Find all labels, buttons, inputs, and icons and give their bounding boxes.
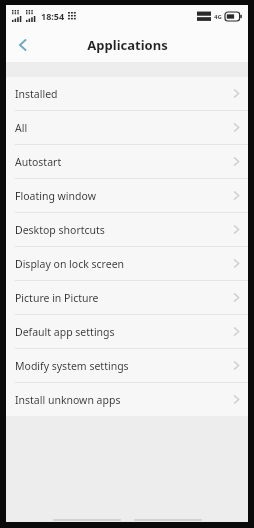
staticText: Autostart [15,155,232,169]
staticText: 18:54 [41,10,65,22]
staticText: All [15,121,232,135]
staticText: Modify system settings [15,359,232,373]
staticText: Install unknown apps [15,393,232,407]
staticText: Installed [15,87,232,101]
staticText: Default app settings [15,325,232,339]
staticText: Display on lock screen [15,257,232,271]
button[interactable]: Default app settings [6,315,248,348]
staticText: Floating window [15,189,232,203]
staticText: 4G [214,13,222,21]
button[interactable]: Installed [6,77,248,110]
button[interactable]: Modify system settings [6,349,248,382]
button[interactable]: Back [6,28,40,62]
staticText: Picture in Picture [15,291,232,305]
staticText: Desktop shortcuts [15,223,232,237]
button[interactable]: Install unknown apps [6,383,248,416]
button[interactable]: Picture in Picture [6,281,248,314]
staticText: Applications [87,36,168,54]
button[interactable]: Desktop shortcuts [6,213,248,246]
button[interactable]: Floating window [6,179,248,212]
button[interactable]: Display on lock screen [6,247,248,280]
button[interactable]: Autostart [6,145,248,178]
button[interactable]: All [6,111,248,144]
